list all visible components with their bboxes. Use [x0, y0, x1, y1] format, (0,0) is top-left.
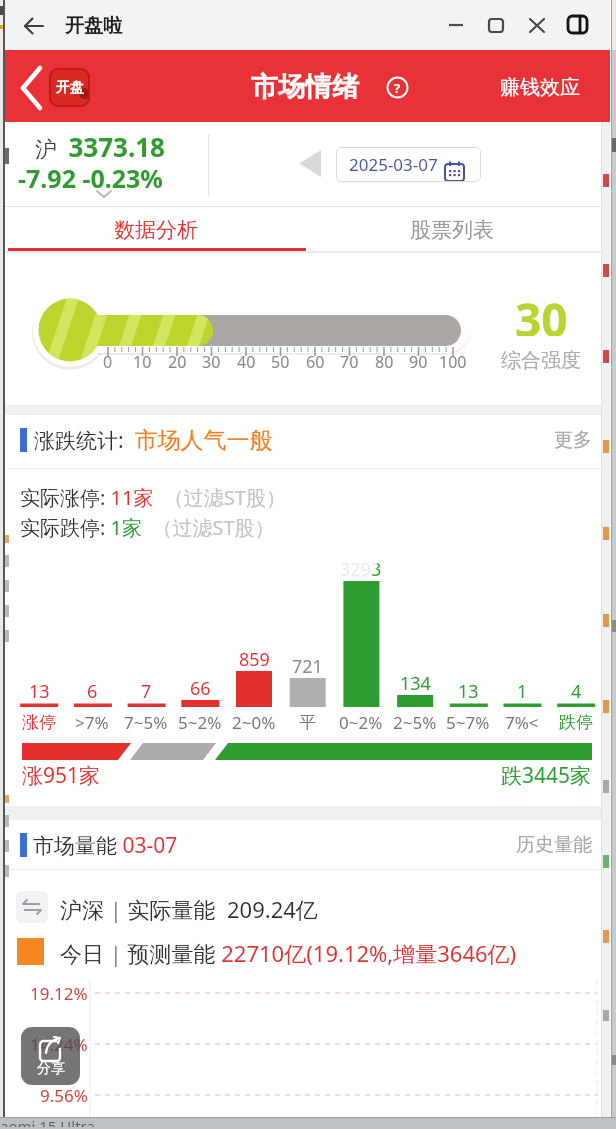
staticText: 跌停 [559, 712, 593, 733]
staticText: 股票列表 [410, 217, 494, 243]
staticText: 4 [571, 679, 582, 704]
staticText: 5~2% [178, 711, 222, 734]
staticText: 历史量能 [516, 833, 592, 857]
staticText: 2~5% [393, 711, 437, 734]
button[interactable] [298, 150, 322, 177]
staticText: 60 [306, 351, 325, 373]
button[interactable]: 历史量能 [500, 825, 600, 865]
staticText: 19.12% [30, 982, 88, 1005]
staticText: 20 [168, 351, 187, 373]
button[interactable] [523, 11, 551, 39]
staticText: 0~2% [339, 711, 383, 734]
staticText: 70 [340, 351, 359, 373]
staticText: 721 [292, 654, 323, 679]
staticText: 开盘 [56, 79, 84, 97]
staticText: 0 [103, 351, 113, 373]
staticText: 市场情绪 [251, 70, 359, 104]
staticText: 2025-03-07 [349, 153, 438, 176]
button[interactable]: 更多 [520, 420, 600, 460]
staticText: >7% [75, 711, 109, 734]
staticText: 平 [299, 712, 316, 733]
staticText: 实际跌停: 1家 （过滤ST股） [20, 514, 275, 541]
staticText: 涨停 [22, 712, 56, 733]
staticText: 赚钱效应 [500, 75, 580, 100]
staticText: 859 [239, 647, 270, 672]
staticText: 沪深 | 实际量能 209.24亿 [60, 894, 318, 924]
staticText: 134 [400, 671, 431, 696]
staticText: 100 [439, 351, 467, 373]
button[interactable] [442, 11, 470, 39]
staticText: 7 [141, 679, 152, 704]
staticText: 30 [202, 351, 221, 373]
staticText: 2~0% [232, 711, 276, 734]
staticText: 更多 [554, 428, 592, 452]
staticText: 6 [87, 679, 98, 704]
staticText: 沪 3373.18 [35, 129, 165, 164]
staticText: 数据分析 [114, 217, 198, 243]
staticText: 13 [29, 679, 50, 704]
staticText: 5~7% [446, 711, 490, 734]
button[interactable]: ? [386, 76, 409, 99]
button[interactable]: 数据分析 [8, 207, 304, 253]
staticText: 跌3445家 [501, 761, 592, 790]
staticText: 实际涨停: 11家 （过滤ST股） [20, 484, 286, 511]
staticText: 9.56% [40, 1084, 88, 1107]
staticText: 3293 [340, 557, 382, 582]
staticText: 开盘啦 [65, 14, 122, 38]
staticText: 50 [271, 351, 290, 373]
staticText: 40 [237, 351, 256, 373]
button[interactable]: 2025-03-07 [336, 147, 481, 182]
staticText: 7%< [505, 711, 539, 734]
staticText: 分享 [37, 1060, 65, 1078]
button[interactable]: 股票列表 [304, 207, 600, 253]
button[interactable] [21, 1027, 80, 1085]
staticText: 7~5% [124, 711, 168, 734]
staticText: 今日 | 预测量能 22710亿(19.12%,增量3646亿) [60, 938, 517, 968]
button[interactable]: 赚钱效应 [480, 62, 600, 112]
staticText: 涨951家 [22, 761, 101, 790]
staticText: aomi 15 Ultra [0, 1116, 95, 1127]
button[interactable]: 开盘 [10, 58, 100, 118]
staticText: 14.24% [30, 1033, 88, 1056]
button[interactable] [563, 11, 593, 39]
staticText: 涨跌统计: 市场人气一般 [34, 426, 273, 455]
staticText: 13 [458, 679, 479, 704]
staticText: 66 [190, 676, 211, 701]
staticText: 90 [409, 351, 428, 373]
staticText: 30 [515, 288, 568, 336]
staticText: 1 [517, 679, 528, 704]
button[interactable] [482, 11, 510, 39]
staticText: 10 [133, 351, 152, 373]
staticText: 市场量能 03-07 [33, 831, 178, 860]
staticText: -7.92 -0.23% [18, 161, 163, 195]
staticText: 综合强度 [501, 348, 581, 373]
button[interactable] [21, 13, 47, 39]
staticText: 80 [375, 351, 394, 373]
staticText: ? [394, 79, 401, 97]
